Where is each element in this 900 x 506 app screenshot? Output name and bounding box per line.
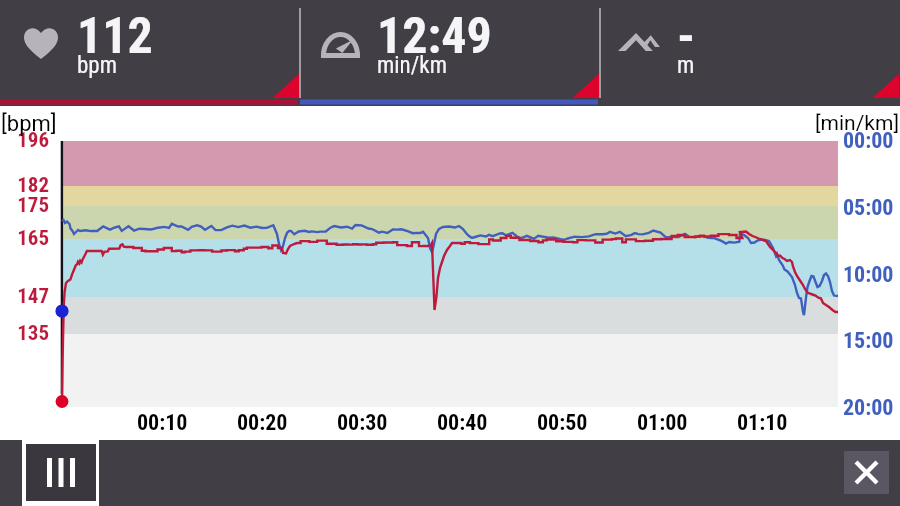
staticText: 00:40 [437, 410, 488, 436]
button[interactable]: - [600, 0, 900, 106]
staticText: 10:00 [843, 262, 894, 288]
button[interactable]: Pause [26, 444, 96, 501]
staticText: m [677, 52, 695, 79]
staticText: 15:00 [843, 328, 894, 354]
staticText: min/km [377, 52, 447, 79]
staticText: 00:30 [337, 410, 388, 436]
staticText: - [677, 7, 696, 66]
staticText: 00:00 [843, 128, 894, 154]
staticText: bpm [77, 52, 118, 79]
staticText: 12:49 [377, 7, 492, 66]
button[interactable]: 12:49 [300, 0, 600, 106]
button[interactable]: 112 [0, 0, 300, 106]
staticText: 00:20 [237, 410, 288, 436]
staticText: 196 [17, 128, 49, 153]
staticText: 112 [77, 7, 153, 66]
staticText: 05:00 [843, 195, 894, 221]
staticText: 135 [17, 321, 49, 346]
staticText: [bpm] [1, 111, 57, 137]
button[interactable]: Close [844, 451, 889, 494]
staticText: 01:00 [637, 410, 688, 436]
staticText: 20:00 [843, 395, 894, 421]
staticText: 00:50 [537, 410, 588, 436]
staticText: 01:10 [737, 410, 788, 436]
staticText: [min/km] [815, 111, 899, 136]
staticText: 147 [17, 284, 49, 309]
staticText: 175 [17, 193, 49, 218]
staticText: 165 [17, 226, 49, 251]
staticText: 182 [17, 173, 49, 198]
staticText: 00:10 [137, 410, 188, 436]
